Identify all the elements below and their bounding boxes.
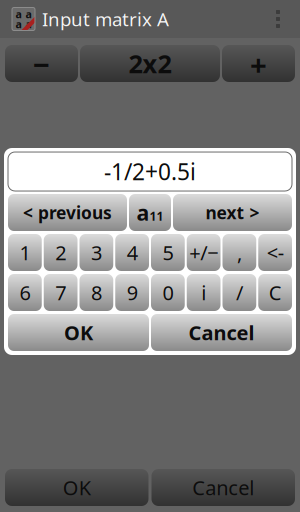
button[interactable]: C — [258, 274, 292, 311]
staticText: Cancel — [192, 474, 254, 501]
button[interactable]: 0 — [151, 274, 185, 311]
staticText: <- — [267, 239, 284, 266]
staticText: C — [269, 279, 282, 306]
staticText: 8 — [91, 279, 102, 306]
staticText: 0 — [162, 279, 173, 306]
button[interactable]: OK — [5, 469, 148, 506]
staticText: OK — [64, 319, 93, 346]
button[interactable]: + — [222, 45, 295, 82]
button[interactable]: +/− — [187, 234, 221, 271]
staticText: 2 — [55, 239, 66, 266]
staticText: 1 — [19, 239, 30, 266]
staticText: + — [250, 45, 267, 82]
staticText: a — [25, 7, 31, 21]
button[interactable]: Cancel — [151, 314, 292, 351]
staticText: 3 — [91, 239, 102, 266]
staticText: i — [201, 279, 206, 306]
staticText: Input matrix A — [42, 7, 169, 31]
button[interactable]: 5 — [151, 234, 185, 271]
button[interactable]: 8 — [79, 274, 113, 311]
staticText: − — [33, 45, 50, 82]
staticText: OK — [63, 474, 91, 501]
button[interactable]: 2 — [44, 234, 78, 271]
staticText: 2x2 — [128, 47, 171, 80]
button[interactable]: 2x2 — [80, 45, 220, 82]
button[interactable]: Cancel — [151, 469, 295, 506]
staticText: < previous — [23, 201, 112, 224]
button[interactable]: 3 — [79, 234, 113, 271]
button[interactable]: 6 — [8, 274, 42, 311]
button[interactable]: a — [129, 194, 171, 231]
button[interactable]: 4 — [115, 234, 149, 271]
button[interactable]: i — [187, 274, 221, 311]
staticText: 5 — [162, 239, 173, 266]
button[interactable]: next > — [173, 194, 292, 231]
staticText: a — [25, 17, 31, 31]
button[interactable]: − — [5, 45, 78, 82]
staticText: next > — [205, 201, 259, 224]
button[interactable]: <- — [258, 234, 292, 271]
staticText: a — [15, 17, 21, 31]
staticText: 9 — [127, 279, 138, 306]
button[interactable]: More options — [264, 0, 292, 38]
staticText: , — [237, 239, 242, 266]
staticText: Cancel — [188, 319, 254, 346]
button[interactable]: 1 — [8, 234, 42, 271]
staticText: 11 — [149, 208, 163, 224]
button[interactable]: OK — [8, 314, 149, 351]
staticText: / — [236, 279, 243, 306]
button[interactable]: , — [222, 234, 256, 271]
button[interactable]: < previous — [8, 194, 127, 231]
staticText: +/− — [189, 239, 218, 266]
button[interactable]: / — [222, 274, 256, 311]
staticText: 4 — [127, 239, 138, 266]
staticText: 7 — [55, 279, 66, 306]
staticText: 6 — [19, 279, 30, 306]
staticText: a — [136, 198, 149, 227]
staticText: -1/2+0.5i — [104, 156, 196, 186]
button[interactable]: 7 — [44, 274, 78, 311]
button[interactable]: 9 — [115, 274, 149, 311]
staticText: a — [15, 7, 21, 21]
